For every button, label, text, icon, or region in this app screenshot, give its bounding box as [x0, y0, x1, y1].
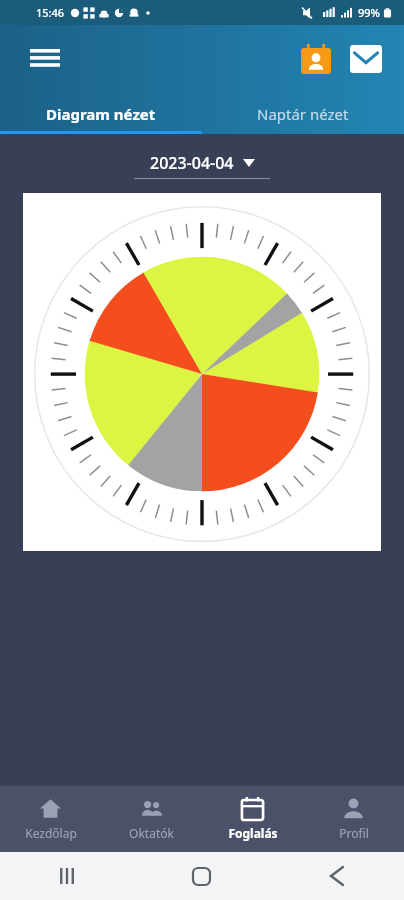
staticText: 99%: [358, 5, 380, 20]
button[interactable]: Back: [269, 852, 404, 900]
button[interactable]: Kezdőlap: [0, 786, 101, 852]
button[interactable]: Diagram nézet: [0, 93, 202, 134]
button[interactable]: Profil: [303, 786, 404, 852]
button[interactable]: Oktatók: [101, 786, 202, 852]
button[interactable]: 2023-04-04: [142, 148, 263, 178]
button[interactable]: Naptár nézet: [202, 93, 404, 134]
staticText: Oktatók: [129, 825, 174, 841]
button[interactable]: Contacts: [294, 37, 338, 81]
button[interactable]: Menu: [22, 36, 68, 82]
button[interactable]: Messages: [344, 37, 388, 81]
staticText: Diagram nézet: [46, 104, 156, 124]
staticText: Profil: [339, 825, 369, 841]
button[interactable]: Recents: [0, 852, 134, 900]
button[interactable]: Home: [134, 852, 269, 900]
staticText: Kezdőlap: [25, 825, 77, 841]
staticText: Naptár nézet: [257, 104, 349, 124]
button[interactable]: Foglalás: [202, 786, 303, 852]
button[interactable]: [23, 193, 381, 551]
staticText: 2023-04-04: [150, 152, 234, 174]
staticText: 15:46: [36, 5, 65, 20]
staticText: Foglalás: [228, 825, 278, 841]
